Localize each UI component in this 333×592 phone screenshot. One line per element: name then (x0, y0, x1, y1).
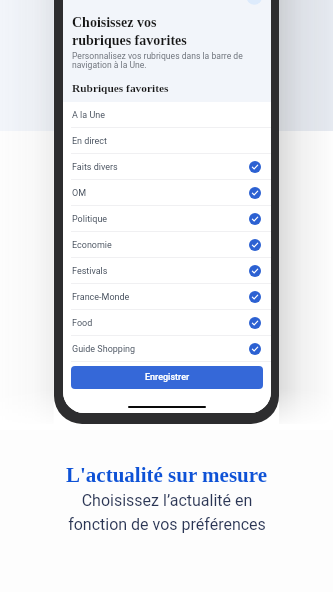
other: Selected (249, 317, 261, 329)
staticText: Choisissez vos rubriques favorites (72, 15, 187, 48)
staticText: Rubriques favorites (72, 82, 169, 95)
other: Selected (249, 187, 261, 199)
button[interactable]: Guide Shopping (63, 336, 271, 362)
other: Selected (249, 265, 261, 277)
other: Selected (249, 239, 261, 251)
button[interactable]: Food (63, 310, 271, 336)
staticText: France-Monde (72, 292, 130, 303)
staticText: Politique (72, 214, 108, 225)
staticText: En direct (72, 136, 107, 147)
button[interactable]: Economie (63, 232, 271, 258)
other: Selected (249, 291, 261, 303)
staticText: L'actualité sur mesure (66, 463, 268, 486)
button[interactable]: France-Monde (63, 284, 271, 310)
button[interactable]: OM (63, 180, 271, 206)
staticText: Guide Shopping (72, 344, 136, 355)
staticText: A la Une (72, 110, 105, 121)
button[interactable]: Politique (63, 206, 271, 232)
staticText: Choisissez l’actualité en fonction de vo… (68, 491, 266, 534)
button[interactable]: En direct (63, 128, 271, 154)
staticText: Enregistrer (145, 372, 190, 383)
other: Selected (249, 213, 261, 225)
other: Selected (249, 161, 261, 173)
staticText: Personnalisez vos rubriques dans la barr… (72, 51, 243, 70)
staticText: Faits divers (72, 162, 118, 173)
staticText: Economie (72, 240, 112, 251)
button[interactable]: A la Une (63, 102, 271, 128)
button[interactable]: Enregistrer (71, 366, 263, 389)
button[interactable]: Faits divers (63, 154, 271, 180)
staticText: Festivals (72, 266, 108, 277)
button[interactable]: Festivals (63, 258, 271, 284)
other: Selected (249, 343, 261, 355)
staticText: OM (72, 188, 87, 199)
staticText: Food (72, 318, 93, 329)
